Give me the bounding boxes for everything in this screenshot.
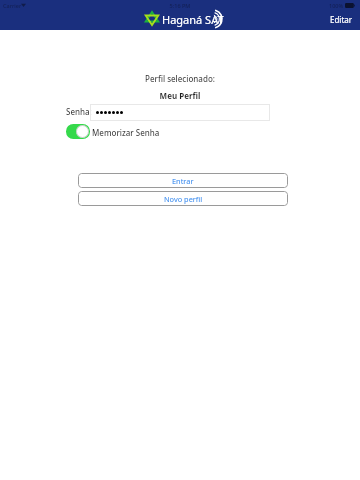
button[interactable]: Entrar <box>78 173 288 188</box>
staticText: Entrar <box>172 176 194 186</box>
staticText: Meu Perfil <box>0 90 360 101</box>
button[interactable]: Memorizar Senha, ativado <box>66 124 90 139</box>
button[interactable]: Memorizar Senha, ativado <box>66 123 160 139</box>
button[interactable]: Editar <box>326 11 357 28</box>
staticText: Carrier <box>3 2 22 9</box>
staticText: Memorizar Senha <box>92 127 160 138</box>
staticText: 5:16 PM <box>0 2 360 9</box>
staticText: Novo perfil <box>164 194 203 204</box>
staticText: Haganá SAT <box>162 12 224 27</box>
staticText: Editar <box>330 14 353 25</box>
button[interactable]: Novo perfil <box>78 191 288 206</box>
staticText: Senha: <box>66 106 92 117</box>
staticText: 100% <box>329 2 344 9</box>
staticText: Perfil selecionado: <box>0 73 360 84</box>
button[interactable]: Campo de senha <box>90 104 270 121</box>
